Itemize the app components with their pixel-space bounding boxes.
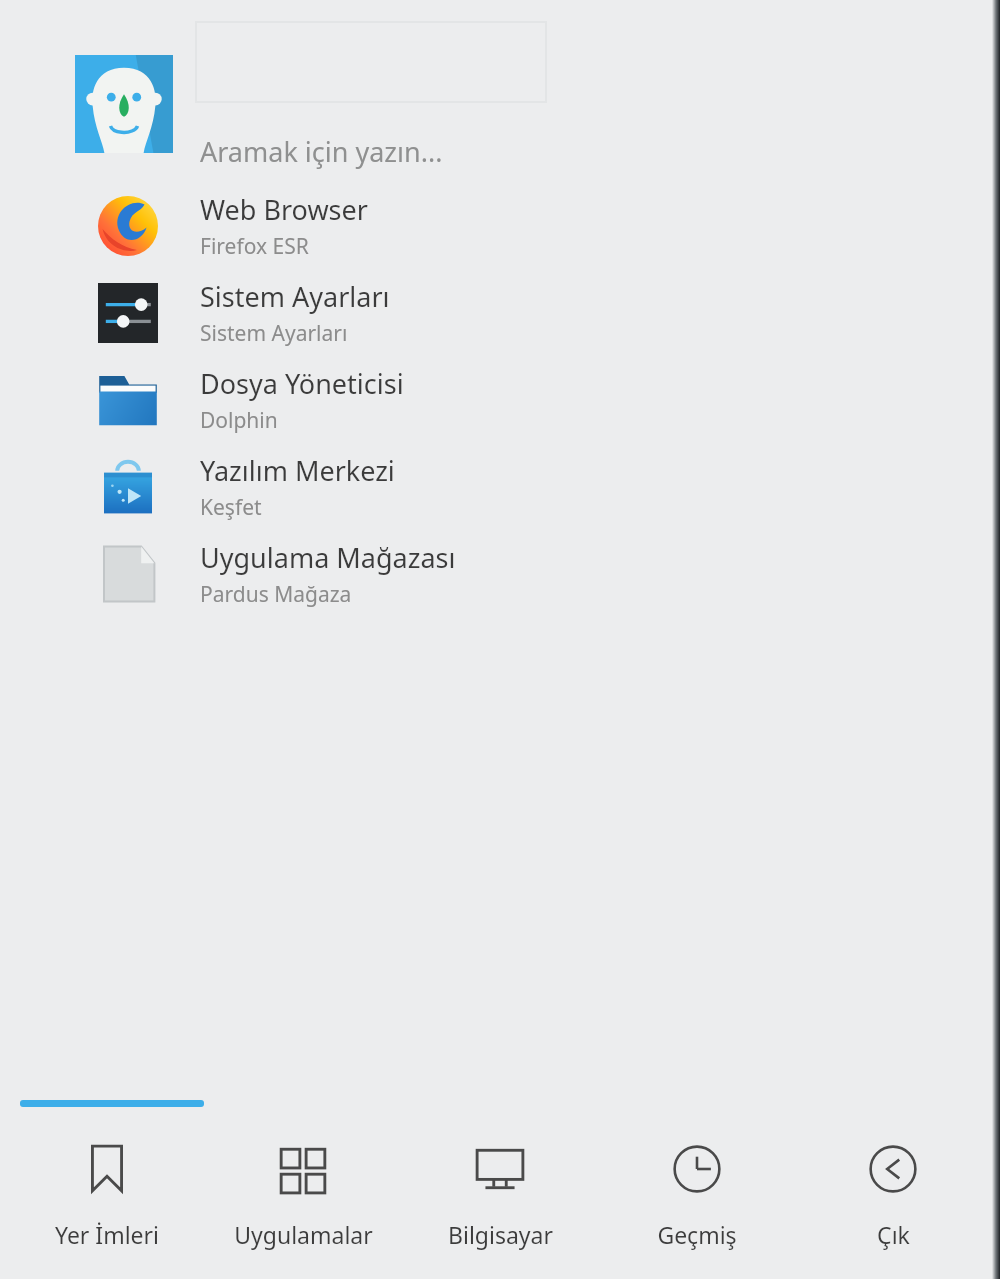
staticText: Uygulama Mağazası	[200, 539, 456, 576]
staticText: Dosya Yöneticisi	[200, 365, 404, 402]
other: Geçmiş	[671, 1143, 723, 1195]
button[interactable]: Sistem Ayarları	[0, 269, 1000, 356]
staticText: Sistem Ayarları	[200, 278, 390, 315]
button[interactable]: Yazılım Merkezi	[0, 443, 1000, 530]
staticText: Firefox ESR	[200, 232, 309, 261]
button[interactable]: User avatar	[75, 55, 173, 153]
staticText: Yer İmleri	[55, 1219, 159, 1250]
staticText: Yazılım Merkezi	[200, 452, 395, 489]
button[interactable]: Uygulamalar	[213, 1139, 393, 1250]
staticText: Sistem Ayarları	[200, 319, 348, 348]
staticText: Dolphin	[200, 406, 278, 435]
other: Çık	[867, 1143, 919, 1195]
button[interactable]: Web Browser	[0, 182, 1000, 269]
other: Bilgisayar	[474, 1143, 526, 1195]
button[interactable]: Çık	[803, 1139, 983, 1250]
button[interactable]: Yer İmleri	[17, 1139, 197, 1250]
button[interactable]: Bilgisayar	[410, 1139, 590, 1250]
staticText: Web Browser	[200, 191, 368, 228]
button[interactable]: Uygulama Mağazası	[0, 530, 1000, 617]
staticText: Çık	[877, 1219, 910, 1250]
staticText: Aramak için yazın...	[200, 133, 443, 170]
other: Yer İmleri	[81, 1143, 133, 1195]
staticText: Keşfet	[200, 493, 262, 522]
other: Uygulamalar	[277, 1143, 329, 1195]
staticText: Bilgisayar	[448, 1219, 553, 1250]
staticText: Uygulamalar	[234, 1219, 373, 1250]
staticText: Geçmiş	[657, 1219, 737, 1250]
staticText: Pardus Mağaza	[200, 580, 352, 609]
button[interactable]: Geçmiş	[607, 1139, 787, 1250]
button[interactable]: Dosya Yöneticisi	[0, 356, 1000, 443]
